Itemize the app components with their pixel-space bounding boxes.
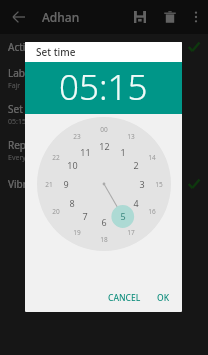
staticText: 7 — [82, 210, 88, 222]
staticText: 16 — [148, 207, 156, 216]
button[interactable]: OK — [151, 287, 176, 309]
staticText: 00 — [100, 125, 108, 134]
button[interactable]: More options — [185, 6, 207, 28]
button[interactable]: Repeat — [0, 132, 208, 168]
button[interactable]: Vibrate — [0, 168, 208, 200]
staticText: 19 — [73, 228, 81, 237]
staticText: 13 — [127, 132, 135, 141]
button[interactable]: Back — [6, 4, 32, 30]
staticText: 10 — [67, 159, 78, 171]
staticText: 23 — [73, 132, 81, 141]
staticText: 9 — [63, 178, 69, 190]
staticText: 6 — [101, 216, 107, 228]
staticText: OK — [157, 292, 170, 304]
staticText: Set time — [36, 45, 76, 59]
staticText: 3 — [139, 178, 145, 190]
staticText: 18 — [100, 235, 108, 244]
button[interactable]: Active — [0, 34, 208, 60]
staticText: Every day — [8, 153, 40, 163]
staticText: 14 — [148, 153, 156, 162]
staticText: 12 — [99, 140, 110, 152]
staticText: Adhan — [42, 9, 80, 25]
staticText: 4 — [133, 197, 139, 209]
staticText: CANCEL — [108, 292, 141, 304]
staticText: 05:15 — [59, 63, 148, 111]
staticText: Fajr — [8, 81, 21, 91]
staticText: Label — [8, 66, 34, 80]
staticText: 15 — [155, 180, 163, 189]
staticText: 05:15 — [8, 117, 26, 127]
staticText: 11 — [80, 146, 91, 158]
button[interactable]: Set time — [0, 96, 208, 132]
staticText: Set time — [8, 102, 47, 116]
staticText: 1 — [120, 146, 126, 158]
staticText: 17 — [127, 228, 135, 237]
staticText: 22 — [52, 153, 60, 162]
staticText: Vibrate — [8, 177, 42, 191]
staticText: 20 — [52, 207, 60, 216]
staticText: Active — [8, 40, 37, 54]
button[interactable]: Delete — [155, 2, 185, 32]
button[interactable]: Label — [0, 60, 208, 96]
button[interactable]: Save — [125, 2, 155, 32]
button[interactable]: CANCEL — [102, 287, 147, 309]
staticText: 2 — [133, 159, 139, 171]
staticText: 21 — [45, 180, 53, 189]
staticText: 8 — [69, 197, 75, 209]
staticText: Repeat — [8, 138, 41, 152]
staticText: 5 — [120, 210, 126, 222]
